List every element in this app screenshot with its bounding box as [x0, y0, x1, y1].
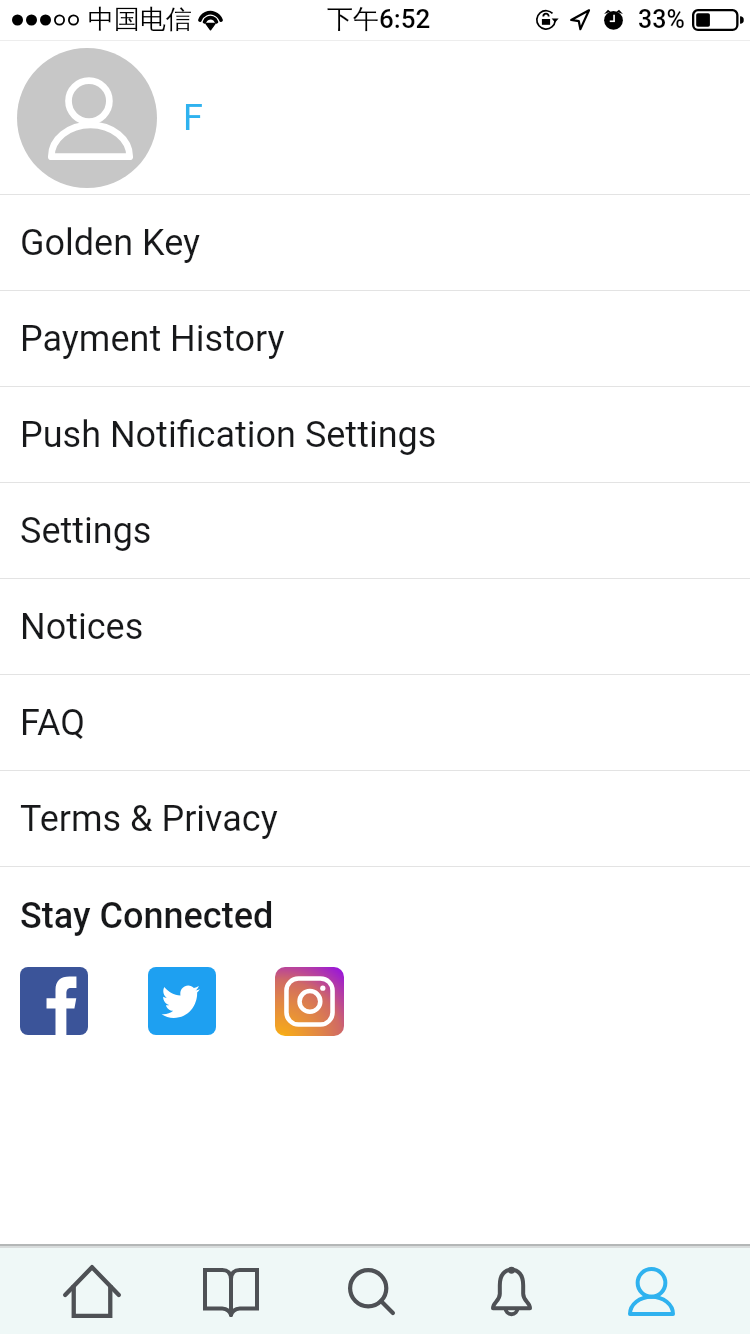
button[interactable]: Library — [161, 1248, 301, 1334]
button[interactable]: Notices — [0, 579, 750, 675]
button[interactable]: Search — [301, 1248, 441, 1334]
button[interactable]: Payment History — [0, 291, 750, 387]
button[interactable]: Settings — [0, 483, 750, 579]
button[interactable]: F — [0, 41, 750, 195]
staticText: Stay Connected — [20, 895, 274, 937]
staticText: Settings — [20, 510, 152, 552]
staticText: FAQ — [20, 702, 85, 744]
button[interactable]: Profile — [581, 1248, 721, 1334]
staticText: Notices — [20, 606, 144, 648]
staticText: 33% — [638, 5, 685, 34]
button[interactable]: Notifications — [441, 1248, 581, 1334]
staticText: Golden Key — [20, 222, 201, 264]
button[interactable]: FAQ — [0, 675, 750, 771]
staticText: 中国电信 — [88, 3, 192, 36]
staticText: Payment History — [20, 318, 285, 360]
button[interactable]: Terms & Privacy — [0, 771, 750, 867]
button[interactable]: Push Notification Settings — [0, 387, 750, 483]
button[interactable]: Home — [22, 1248, 161, 1334]
button[interactable]: Instagram — [275, 967, 344, 1036]
staticText: Terms & Privacy — [20, 798, 278, 840]
staticText: 下午6:52 — [327, 3, 431, 36]
button[interactable]: Facebook — [20, 967, 88, 1035]
button[interactable]: Golden Key — [0, 195, 750, 291]
staticText: Push Notification Settings — [20, 414, 437, 456]
button[interactable]: Twitter — [148, 967, 216, 1035]
staticText: F — [183, 97, 203, 139]
